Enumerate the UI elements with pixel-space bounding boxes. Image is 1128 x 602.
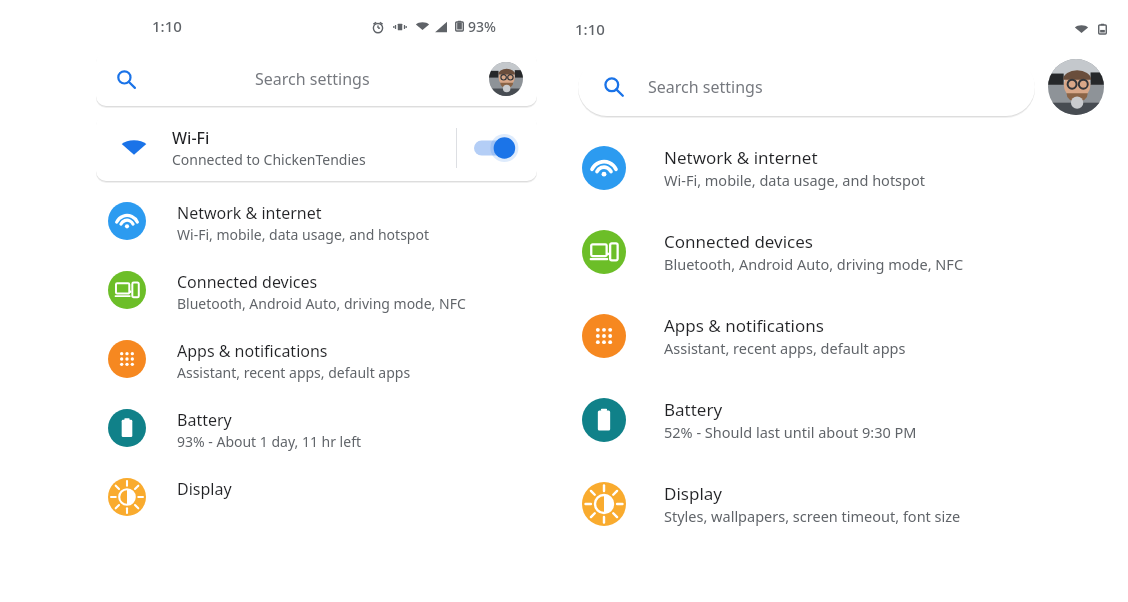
button[interactable]: Wi-Fi	[96, 115, 537, 181]
button[interactable]: Network & internet	[0, 202, 556, 244]
staticText: Bluetooth, Android Auto, driving mode, N…	[177, 294, 466, 313]
staticText: Bluetooth, Android Auto, driving mode, N…	[664, 254, 964, 274]
staticText: Search settings	[255, 68, 370, 90]
button[interactable]: Search settings	[578, 58, 1035, 116]
staticText: Connected devices	[177, 271, 318, 293]
staticText: Battery	[177, 409, 232, 431]
staticText: 52% - Should last until about 9:30 PM	[664, 422, 917, 442]
button[interactable]: Account	[1048, 59, 1104, 115]
button[interactable]: Account	[489, 62, 523, 96]
staticText: Connected to ChickenTendies	[172, 150, 366, 169]
button[interactable]: Battery	[0, 409, 556, 451]
staticText: Apps & notifications	[177, 340, 328, 362]
staticText: 1:10	[152, 16, 182, 36]
button[interactable]: Battery	[556, 398, 1128, 442]
staticText: Wi-Fi, mobile, data usage, and hotspot	[664, 170, 925, 190]
button[interactable]: Display	[0, 478, 556, 516]
staticText: Wi-Fi, mobile, data usage, and hotspot	[177, 225, 429, 244]
staticText: Connected devices	[664, 230, 814, 253]
staticText: Network & internet	[664, 146, 818, 169]
staticText: Display	[177, 478, 232, 500]
staticText: Styles, wallpapers, screen timeout, font…	[664, 506, 961, 526]
staticText: 93% - About 1 day, 11 hr left	[177, 432, 362, 451]
staticText: Apps & notifications	[664, 314, 824, 337]
staticText: Network & internet	[177, 202, 322, 224]
button[interactable]: Wi-Fi toggle	[457, 115, 537, 181]
button[interactable]: Apps & notifications	[556, 314, 1128, 358]
staticText: Display	[664, 482, 722, 505]
staticText: Battery	[664, 398, 723, 421]
staticText: 1:10	[575, 19, 605, 39]
staticText: Assistant, recent apps, default apps	[664, 338, 906, 358]
staticText: Search settings	[648, 76, 763, 98]
button[interactable]: Search settings	[96, 52, 537, 106]
button[interactable]: Connected devices	[0, 271, 556, 313]
staticText: Assistant, recent apps, default apps	[177, 363, 411, 382]
button[interactable]: Network & internet	[556, 146, 1128, 190]
button[interactable]: Display	[556, 482, 1128, 526]
button[interactable]: Connected devices	[556, 230, 1128, 274]
button[interactable]: Apps & notifications	[0, 340, 556, 382]
staticText: 93%	[468, 17, 496, 36]
staticText: Wi-Fi	[172, 127, 210, 149]
